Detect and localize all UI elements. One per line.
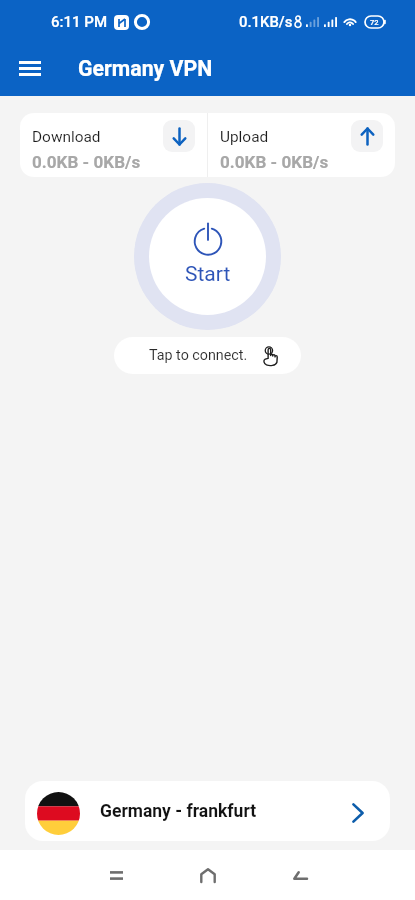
button[interactable]: Tap to connect. bbox=[114, 337, 301, 374]
staticText: Tap to connect. bbox=[149, 347, 248, 364]
button[interactable]: Download bbox=[20, 113, 207, 177]
button[interactable]: Open navigation menu bbox=[7, 47, 53, 93]
button[interactable]: Home bbox=[186, 853, 230, 897]
staticText: 0.1KB/s bbox=[239, 13, 293, 30]
staticText: 0.0KB - 0KB/s bbox=[32, 152, 141, 172]
staticText: 72 bbox=[370, 18, 379, 27]
button[interactable]: Recent apps bbox=[94, 853, 138, 897]
staticText: 6:11 PM bbox=[51, 13, 108, 31]
button[interactable]: Germany - frankfurt bbox=[25, 781, 390, 841]
staticText: Germany VPN bbox=[78, 56, 213, 81]
button[interactable]: Back bbox=[278, 853, 322, 897]
staticText: Upload bbox=[220, 128, 269, 146]
staticText: 0.0KB - 0KB/s bbox=[220, 152, 329, 172]
staticText: Germany - frankfurt bbox=[100, 801, 257, 822]
button[interactable]: Start VPN connection bbox=[134, 183, 281, 330]
button[interactable]: Upload bbox=[208, 113, 395, 177]
staticText: Download bbox=[32, 128, 101, 146]
staticText: Start bbox=[185, 262, 231, 287]
